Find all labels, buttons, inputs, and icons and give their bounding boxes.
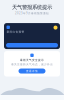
staticText: 2023年9月暴雨预警通知 — [15, 12, 49, 15]
staticText: 暴雨天气安全提示 — [20, 58, 44, 62]
staticText: 请关注最新天气动态，减少外出 — [11, 63, 53, 66]
staticText: 天气警报系统提示 — [12, 4, 52, 11]
staticText: 查看详情 — [26, 69, 38, 73]
staticText: 暴雨红色预警 — [6, 30, 24, 33]
button[interactable]: 查看详情 — [18, 68, 45, 73]
